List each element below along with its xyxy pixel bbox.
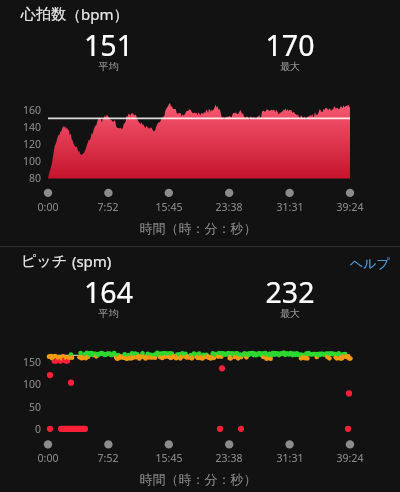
button[interactable]: ヘルプ	[350, 255, 390, 271]
staticText: 15:45	[139, 451, 199, 465]
staticText: 50	[0, 400, 41, 414]
staticText: 23:38	[199, 451, 259, 465]
staticText: 100	[0, 377, 41, 391]
staticText: 140	[0, 120, 41, 134]
staticText: ヘルプ	[350, 255, 390, 271]
staticText: 160	[0, 103, 41, 117]
staticText: 時間（時：分：秒）	[98, 220, 298, 236]
staticText: (spm)	[68, 251, 112, 271]
staticText: 151	[18, 26, 199, 65]
staticText: 0	[0, 422, 41, 436]
staticText: 39:24	[320, 451, 380, 465]
staticText: 164	[18, 273, 199, 312]
staticText: （bpm）	[66, 4, 129, 24]
staticText: 0:00	[18, 451, 78, 465]
staticText: 時間（時：分：秒）	[98, 471, 298, 487]
staticText: 170	[199, 26, 381, 65]
staticText: 232	[199, 273, 381, 312]
staticText: 31:31	[260, 451, 320, 465]
staticText: 39:24	[320, 200, 380, 214]
staticText: 150	[0, 355, 41, 369]
staticText: 120	[0, 137, 41, 151]
staticText: 平均	[18, 307, 199, 320]
staticText: 31:31	[260, 200, 320, 214]
staticText: 7:52	[78, 200, 138, 214]
staticText: 心拍数	[21, 5, 66, 24]
staticText: 平均	[18, 60, 199, 73]
staticText: ピッチ	[21, 252, 68, 271]
staticText: 15:45	[139, 200, 199, 214]
staticText: 100	[0, 154, 41, 168]
staticText: 最大	[199, 60, 381, 73]
staticText: 最大	[199, 307, 381, 320]
staticText: 23:38	[199, 200, 259, 214]
staticText: 7:52	[78, 451, 138, 465]
staticText: 80	[0, 171, 41, 185]
staticText: 0:00	[18, 200, 78, 214]
